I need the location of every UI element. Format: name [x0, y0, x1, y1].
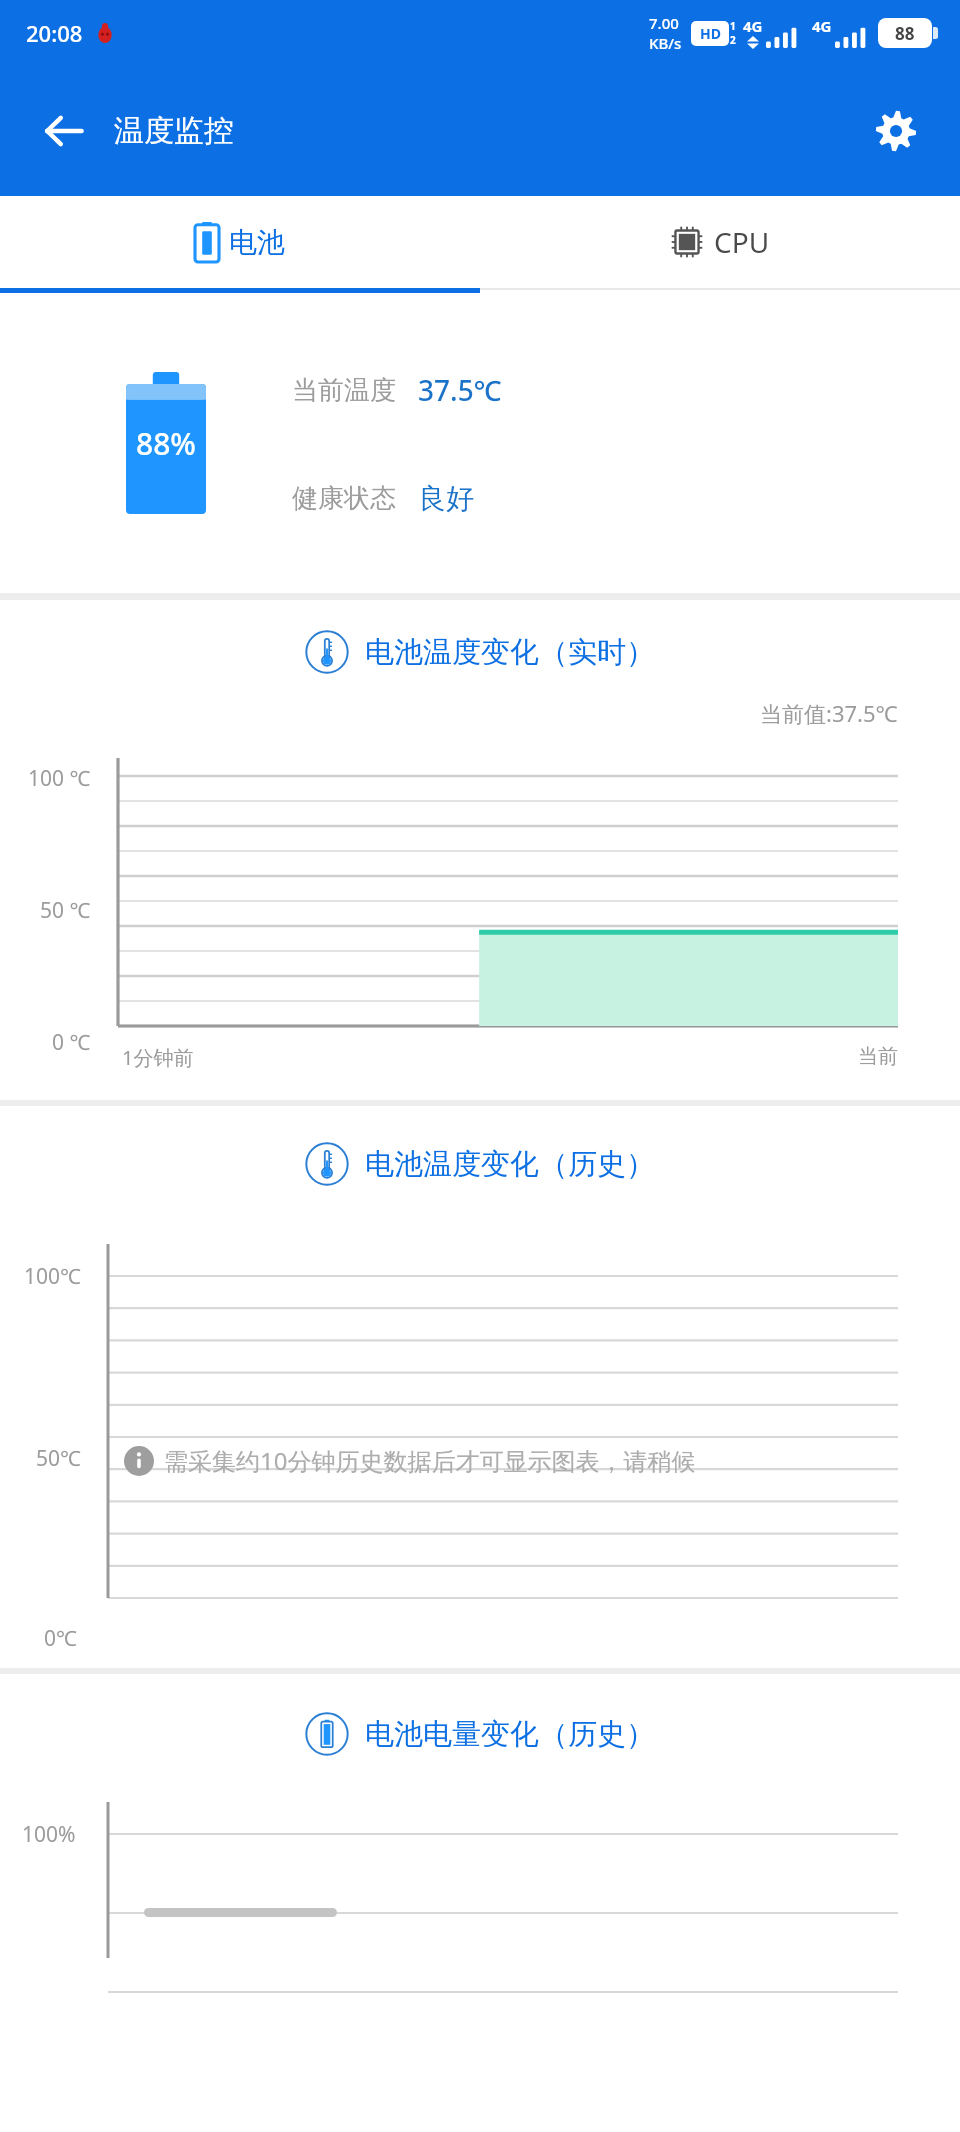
staticText: 当前温度	[292, 374, 396, 407]
staticText: 100%	[22, 1820, 76, 1849]
staticText: 88%	[136, 423, 196, 464]
staticText: 温度监控	[114, 112, 234, 150]
staticText: 100℃	[24, 1262, 81, 1291]
staticText: HD	[700, 24, 721, 43]
staticText: 100 ℃	[28, 764, 91, 793]
staticText: 0 ℃	[52, 1028, 91, 1057]
staticText: 电池电量变化（历史）	[365, 1716, 655, 1753]
button[interactable]: Settings	[858, 93, 934, 169]
staticText: KB/s	[649, 33, 682, 53]
staticText: 2	[730, 33, 736, 47]
staticText: 电池温度变化（实时）	[365, 634, 655, 671]
button[interactable]: 电池	[0, 196, 480, 288]
staticText: 88	[895, 22, 915, 45]
staticText: 50℃	[36, 1444, 81, 1473]
staticText: 0℃	[44, 1624, 77, 1653]
staticText: 20:08	[26, 18, 83, 48]
staticText: 7.00	[649, 13, 679, 33]
staticText: 良好	[418, 481, 474, 516]
staticText: 4G	[812, 16, 832, 36]
button[interactable]: Back	[28, 95, 100, 167]
staticText: 4G	[743, 16, 763, 36]
staticText: 37.5℃	[418, 371, 502, 409]
staticText: 1分钟前	[122, 1044, 194, 1071]
staticText: 电池	[229, 225, 285, 260]
staticText: 健康状态	[292, 482, 396, 515]
button[interactable]: CPU	[480, 196, 960, 288]
staticText: 50 ℃	[40, 896, 91, 925]
staticText: 电池温度变化（历史）	[365, 1146, 655, 1183]
staticText: 当前	[858, 1044, 898, 1069]
staticText: 1	[730, 19, 736, 33]
staticText: CPU	[714, 223, 770, 261]
staticText: 需采集约10分钟历史数据后才可显示图表，请稍候	[164, 1444, 696, 1477]
staticText: 当前值:37.5℃	[760, 698, 898, 728]
